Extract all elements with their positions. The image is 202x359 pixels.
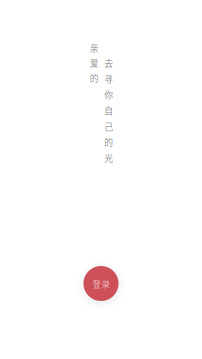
staticText: 亲 (90, 42, 99, 54)
staticText: 光 (104, 151, 113, 164)
staticText: 寻 (104, 72, 113, 85)
staticText: 录 (101, 277, 109, 290)
button[interactable]: 登录 (83, 266, 118, 301)
staticText: 自 (104, 104, 113, 117)
staticText: 己 (104, 120, 113, 133)
staticText: 的 (90, 72, 99, 84)
staticText: 的 (104, 136, 113, 148)
staticText: 去 (104, 57, 113, 69)
staticText: 登 (92, 277, 100, 290)
staticText: 你 (104, 88, 113, 101)
staticText: 爱 (90, 57, 99, 69)
